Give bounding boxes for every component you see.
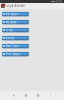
staticText: Ask Lawyer — [6, 12, 19, 16]
button[interactable]: Advice — [2, 36, 29, 40]
button[interactable]: Find Lawyer — [2, 52, 29, 56]
staticText: Find Lawyer — [6, 52, 21, 56]
staticText: Advice — [6, 36, 15, 40]
staticText: My Lawyer — [6, 20, 18, 24]
button[interactable]: Home — [24, 94, 27, 97]
staticText: New Claim — [6, 44, 19, 48]
button[interactable]: Forms — [2, 28, 29, 32]
button[interactable]: Ask Lawyer — [2, 12, 29, 16]
button[interactable]: New Claim — [2, 44, 29, 48]
button[interactable]: Recents — [37, 94, 39, 97]
button[interactable]: My Lawyer — [2, 20, 29, 24]
staticText: Forms — [6, 28, 13, 32]
staticText: 9:41 — [56, 0, 63, 3]
staticText: Legal Assistant — [6, 4, 25, 7]
button[interactable]: Menu — [49, 94, 52, 97]
button[interactable]: Back — [12, 94, 15, 97]
